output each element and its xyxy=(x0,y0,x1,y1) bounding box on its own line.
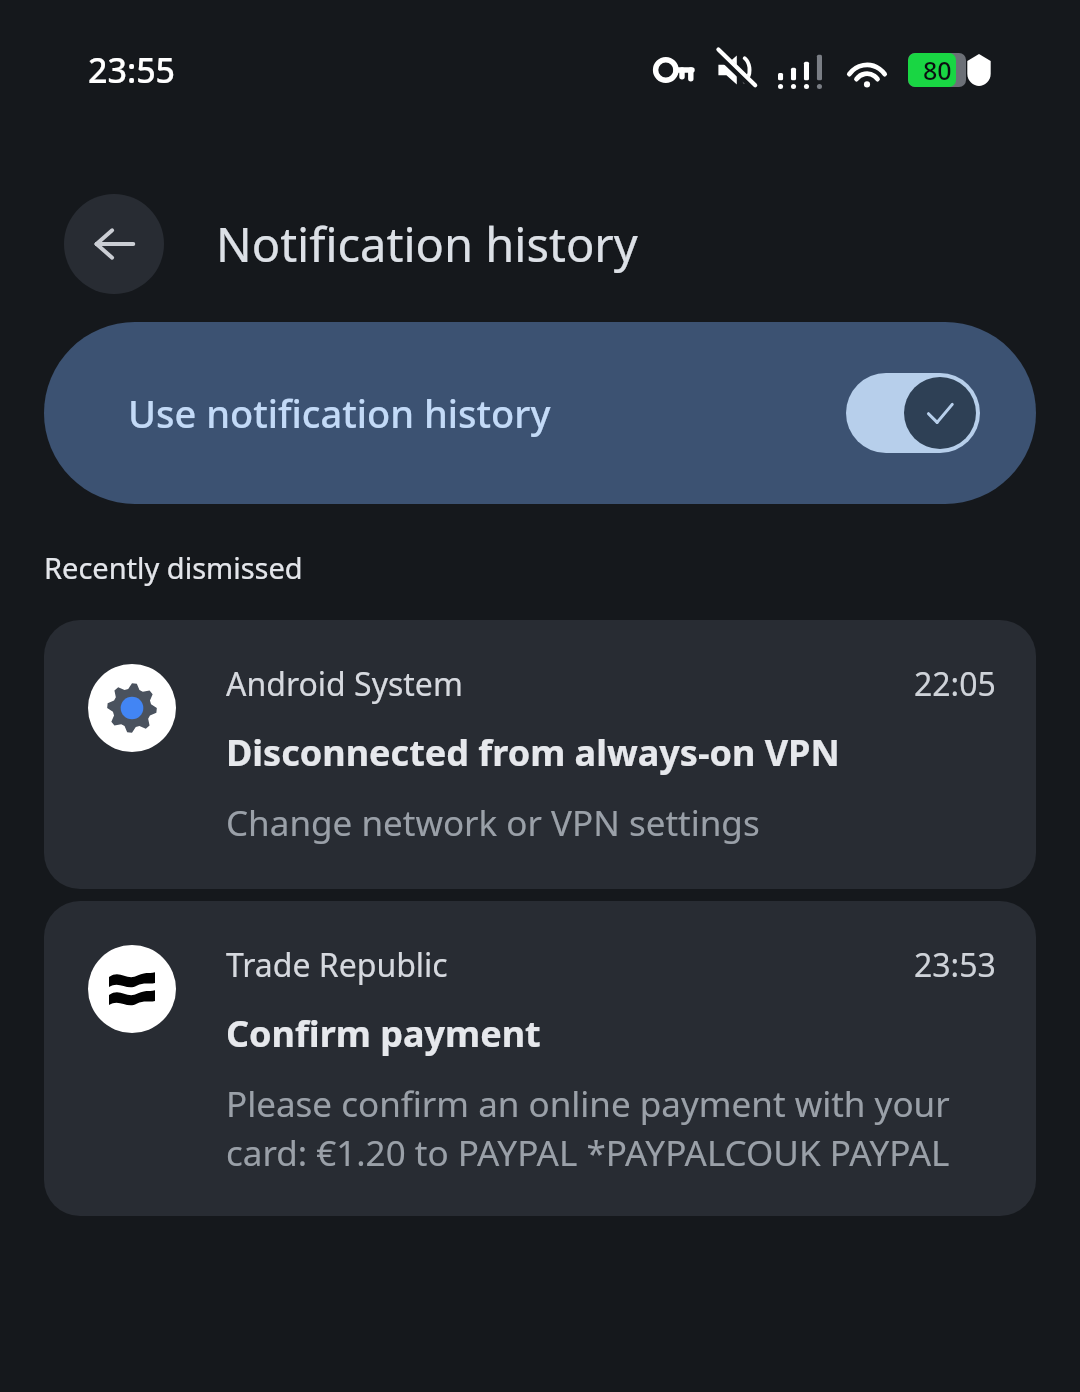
button[interactable]: Android System xyxy=(44,620,1036,889)
staticText: Disconnected from always-on VPN xyxy=(226,728,840,777)
staticText: Android System xyxy=(226,662,914,706)
button[interactable]: Trade Republic xyxy=(44,901,1036,1216)
staticText: Trade Republic xyxy=(226,943,914,987)
staticText: 23:53 xyxy=(914,943,996,987)
staticText: Notification history xyxy=(216,212,638,276)
staticText: 22:05 xyxy=(914,662,996,706)
staticText: Recently dismissed xyxy=(44,548,303,587)
staticText: Confirm payment xyxy=(226,1009,541,1058)
staticText: Use notification history xyxy=(128,387,846,439)
staticText: Change network or VPN settings xyxy=(226,799,760,847)
staticText: Please confirm an online payment with yo… xyxy=(226,1080,996,1176)
button[interactable]: Use notification history xyxy=(44,322,1036,504)
staticText: 23:55 xyxy=(88,47,176,93)
button[interactable]: Back xyxy=(64,194,164,294)
staticText: 80 xyxy=(923,53,952,87)
